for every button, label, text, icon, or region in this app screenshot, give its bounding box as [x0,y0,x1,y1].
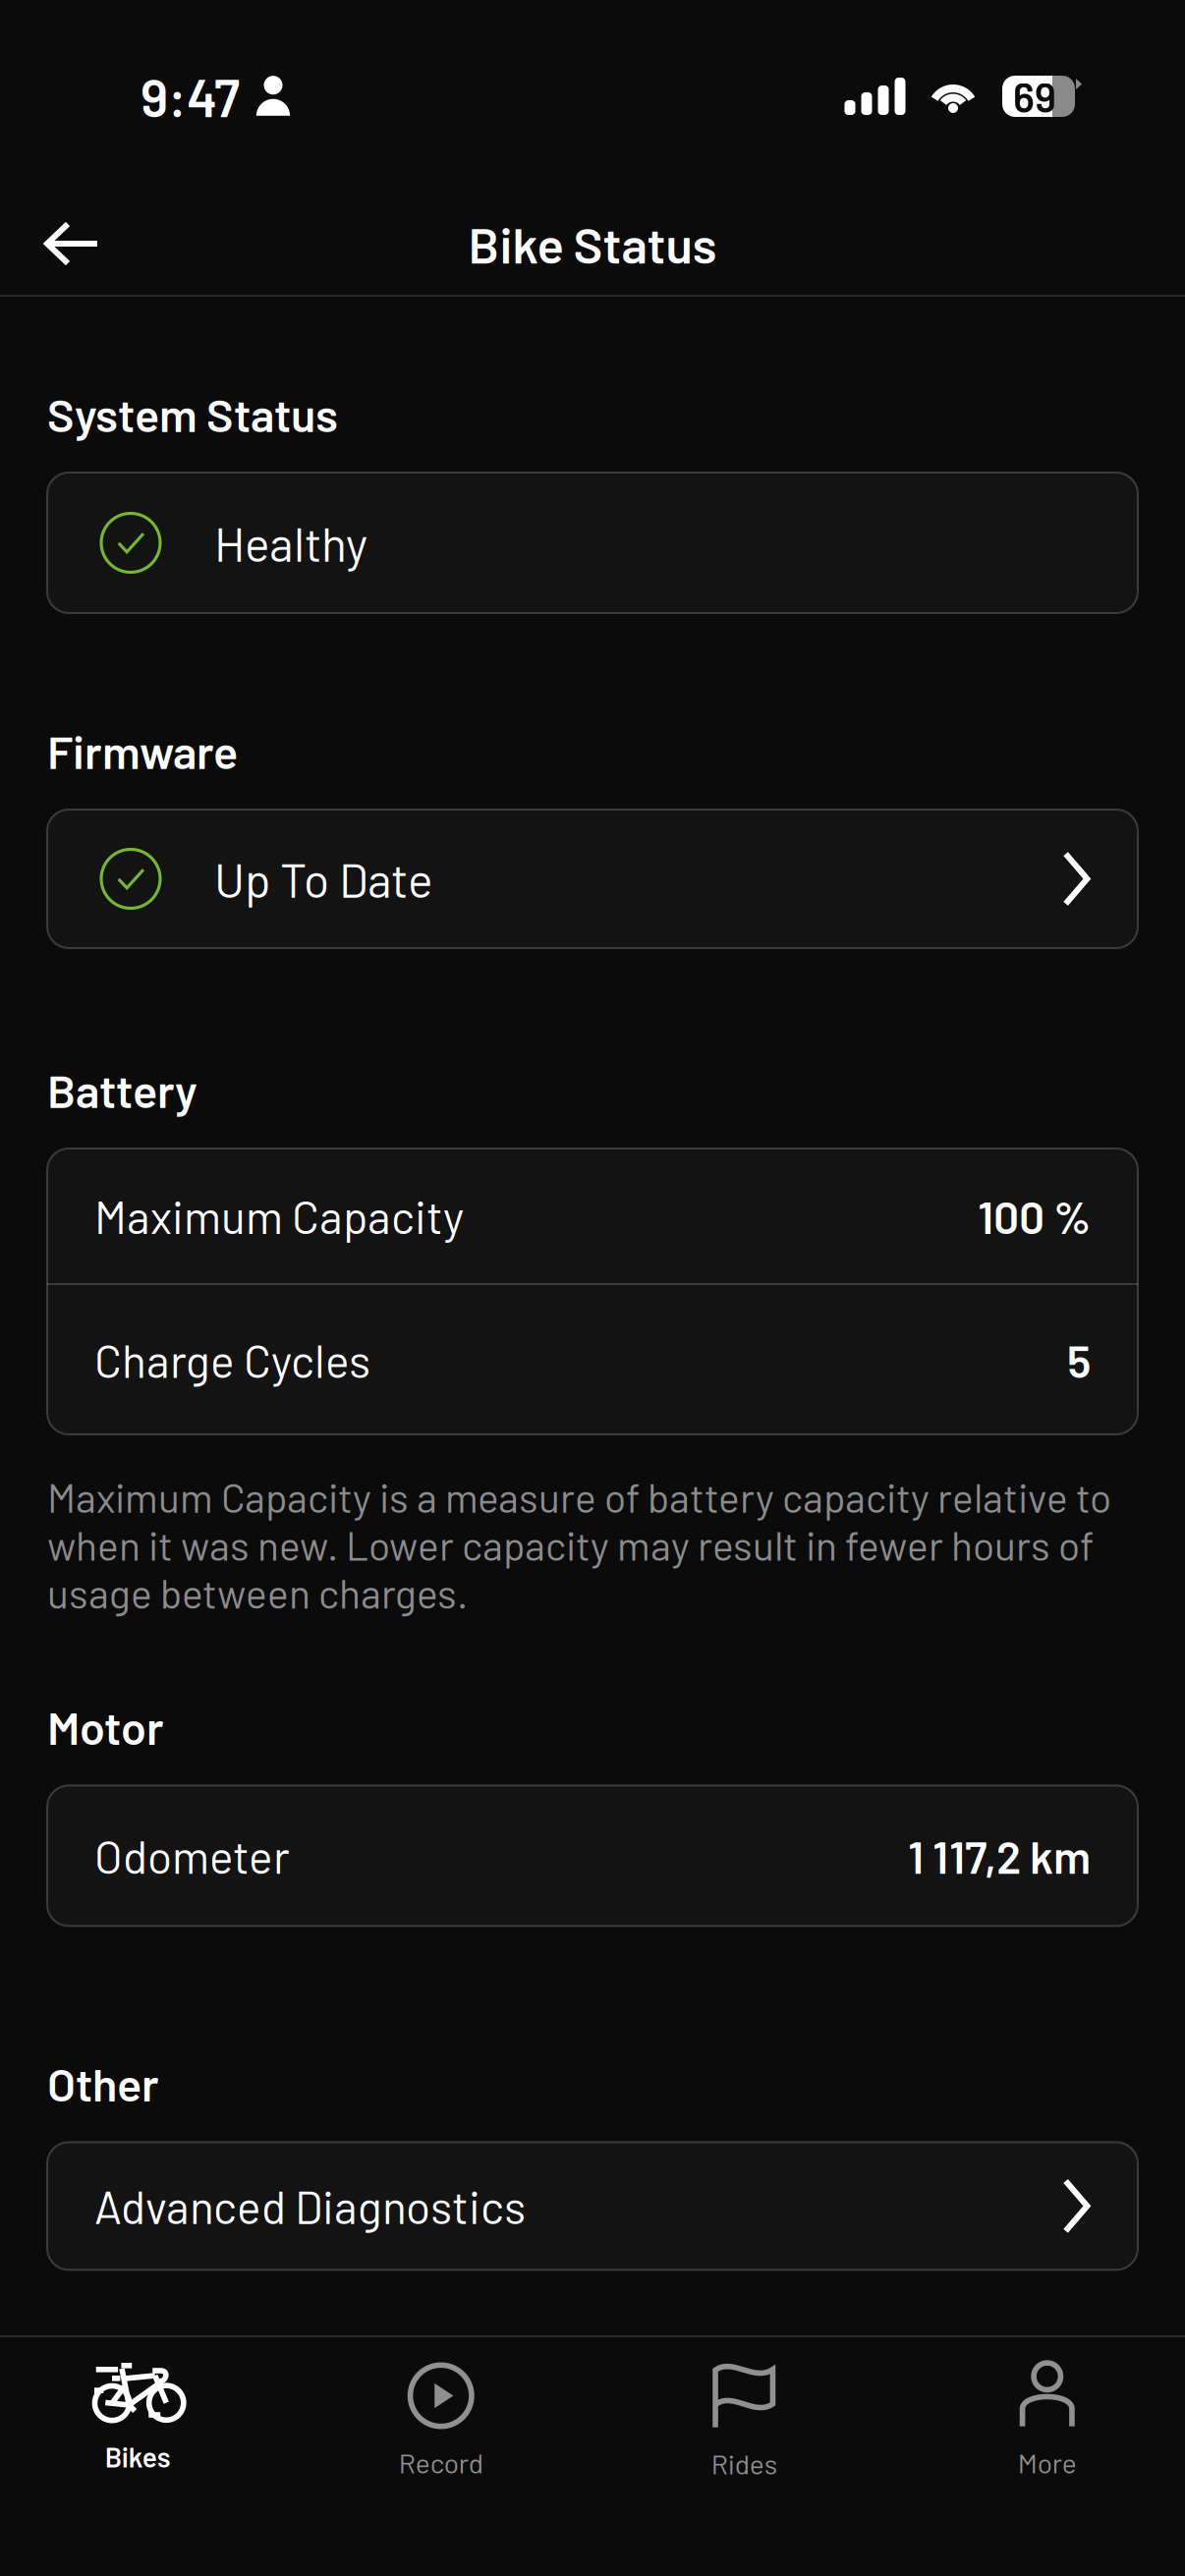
staticText: Record [399,2446,483,2479]
button[interactable]: Bikes [0,2337,289,2576]
staticText: Up To Date [214,851,433,907]
staticText: Bike Status [468,214,717,274]
staticText: Motor [47,1699,164,1754]
staticText: 69 [1013,72,1056,121]
staticText: Maximum Capacity is a measure of battery… [47,1473,1111,1617]
staticText: 1 117,2 km [908,1829,1091,1883]
button[interactable]: Back [18,190,126,298]
staticText: Firmware [47,723,238,778]
staticText: Healthy [214,515,367,571]
staticText: More [1018,2446,1077,2479]
staticText: Bikes [105,2440,171,2473]
staticText: Maximum Capacity [94,1189,464,1243]
staticText: Advanced Diagnostics [94,2179,526,2233]
staticText: 5 [1067,1333,1091,1387]
button[interactable]: Up To Date [0,810,1185,948]
staticText: Other [47,2056,159,2111]
button[interactable]: Advanced Diagnostics [0,2142,1185,2270]
staticText: 100 % [978,1189,1091,1243]
button[interactable]: Rides [592,2337,896,2576]
staticText: Odometer [94,1829,290,1883]
button[interactable]: More [896,2337,1185,2576]
staticText: Rides [711,2447,777,2480]
button[interactable]: Record [289,2337,592,2576]
staticText: Charge Cycles [94,1333,370,1387]
staticText: System Status [47,386,338,441]
staticText: Battery [47,1062,197,1117]
staticText: 9:47 [141,65,240,128]
